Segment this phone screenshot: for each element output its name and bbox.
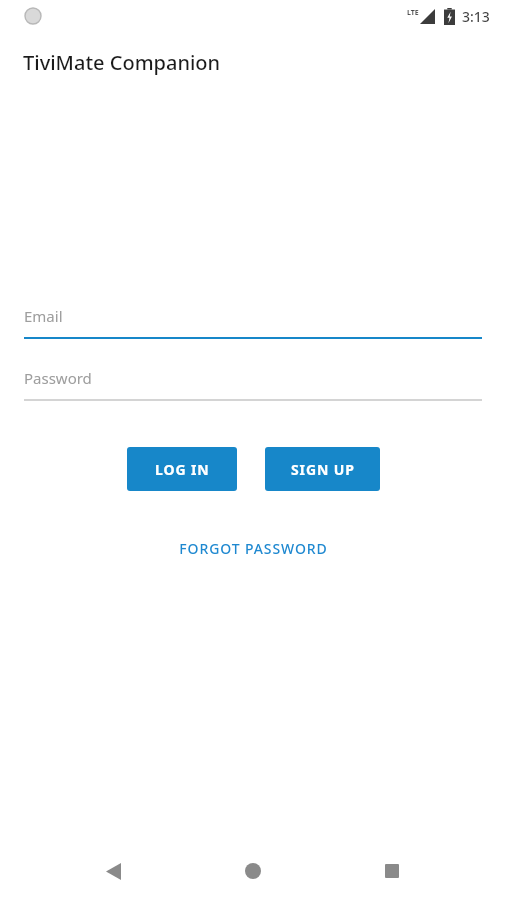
staticText: Email bbox=[24, 306, 63, 326]
staticText: LTE bbox=[407, 8, 419, 18]
staticText: SIGN UP bbox=[291, 460, 355, 479]
staticText: FORGOT PASSWORD bbox=[179, 539, 328, 558]
staticText: Password bbox=[24, 368, 92, 388]
staticText: 3:13 bbox=[462, 7, 490, 26]
staticText: LOG IN bbox=[155, 460, 210, 479]
button[interactable]: Back bbox=[89, 847, 137, 895]
button[interactable]: SIGN UP bbox=[265, 447, 380, 491]
staticText: TiviMate Companion bbox=[23, 49, 221, 76]
button[interactable]: Recents bbox=[368, 847, 416, 895]
button[interactable]: Home bbox=[229, 847, 277, 895]
button[interactable]: LOG IN bbox=[127, 447, 237, 491]
button[interactable]: FORGOT PASSWORD bbox=[0, 531, 506, 565]
